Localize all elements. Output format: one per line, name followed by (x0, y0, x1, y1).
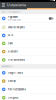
button[interactable]: Dane (0, 39, 56, 48)
staticText: Sieć komórkowa (8, 58, 25, 61)
staticText: URZĄDZENIE (1, 65, 12, 68)
staticText: 4G (49, 0, 51, 1)
button[interactable]: Sieć komórkowa (0, 56, 56, 64)
button[interactable]: Mobilne hotspoty (0, 23, 56, 32)
staticText: SIEĆ I POŁĄCZENIA (1, 11, 20, 13)
staticText: Brak połączenia (8, 19, 21, 21)
button[interactable]: Google i konta (0, 69, 56, 77)
staticText: Dźwięk (8, 80, 16, 82)
button[interactable]: Dźwięk (0, 77, 56, 85)
staticText: Dostępność (8, 96, 19, 99)
button[interactable]: Pogrzebne (0, 14, 56, 23)
staticText: Wi-Fi (8, 34, 14, 37)
staticText: Ustawienia (7, 3, 26, 7)
button[interactable]: Tryb Oszczędzania (0, 85, 56, 94)
button[interactable]: Wi-Fi (0, 32, 56, 39)
button[interactable]: Menu (1, 3, 5, 7)
button[interactable]: Bluetooth (0, 48, 56, 56)
staticText: Dane (8, 42, 13, 45)
staticText: Google i konta (8, 71, 23, 74)
button[interactable]: Dostępność (0, 94, 56, 100)
staticText: Tryb Oszczędzania (8, 88, 26, 91)
staticText: Bluetooth (8, 50, 18, 53)
staticText: Mobilne hotspoty (8, 26, 25, 29)
staticText: Pogrzebne (8, 16, 18, 19)
